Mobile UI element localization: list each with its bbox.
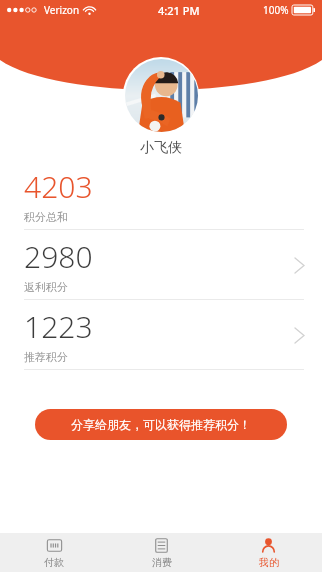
button[interactable]: 4203 [0, 160, 322, 230]
staticText: 消费 [152, 556, 172, 569]
button[interactable]: 付款 [0, 533, 108, 572]
button[interactable]: 我的 [215, 533, 322, 572]
button[interactable]: 消费 [108, 533, 215, 572]
staticText: 积分总和 [24, 210, 68, 224]
staticText: 2980 [24, 236, 93, 277]
button[interactable]: Profile photo [123, 57, 199, 133]
button[interactable]: 2980 [0, 230, 322, 300]
staticText: Verizon [44, 3, 80, 17]
staticText: 1223 [24, 306, 93, 347]
staticText: 小飞侠 [140, 139, 182, 157]
button[interactable]: 分享给朋友，可以获得推荐积分！ [35, 409, 287, 440]
staticText: 我的 [259, 556, 279, 569]
staticText: 4:21 PM [158, 3, 200, 18]
staticText: 分享给朋友，可以获得推荐积分！ [71, 417, 251, 432]
staticText: 4203 [24, 166, 93, 207]
button[interactable]: 1223 [0, 300, 322, 370]
staticText: 推荐积分 [24, 350, 68, 364]
staticText: 100% [263, 3, 289, 17]
staticText: 付款 [44, 556, 64, 569]
staticText: 返利积分 [24, 280, 68, 294]
